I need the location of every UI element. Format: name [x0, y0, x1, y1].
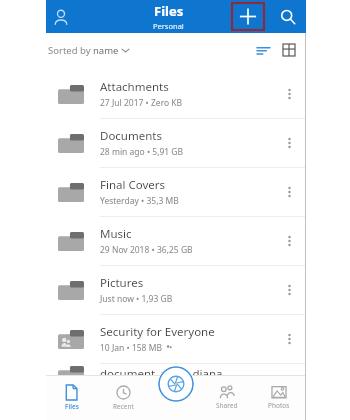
button[interactable]: document_aagu_diana	[46, 364, 306, 386]
button[interactable]: Grid view	[276, 37, 302, 63]
staticText: Documents	[100, 128, 162, 144]
staticText: Music	[100, 226, 132, 242]
button[interactable]: Documents	[46, 119, 306, 167]
staticText: Files	[65, 402, 79, 411]
button[interactable]: Recent	[97, 375, 149, 420]
staticText: Photos	[268, 401, 290, 410]
staticText: Security for Everyone	[100, 324, 215, 340]
staticText: Sorted by	[48, 44, 93, 57]
staticText: 10 Jan • 158 MB	[100, 342, 162, 354]
button[interactable]: Music	[46, 217, 306, 265]
button[interactable]: Pictures	[46, 266, 306, 314]
staticText: 29 Nov 2018 • 36,25 GB	[100, 244, 193, 256]
button[interactable]: Photos	[253, 375, 305, 420]
staticText: 27 Jul 2017 • Zero KB	[100, 97, 183, 109]
button[interactable]: More options	[276, 81, 302, 107]
button[interactable]: Scan	[158, 366, 194, 402]
button[interactable]: Search	[274, 3, 302, 31]
button[interactable]: More options	[276, 179, 302, 205]
button[interactable]: Shared	[201, 375, 253, 420]
button[interactable]: More options	[276, 326, 302, 352]
button[interactable]: More options	[276, 228, 302, 254]
button[interactable]: More options	[276, 277, 302, 303]
staticText: 28 min ago • 5,91 GB	[100, 146, 184, 158]
button[interactable]: Sort order	[250, 37, 276, 63]
staticText: Shared	[216, 401, 238, 410]
staticText: Personal	[153, 21, 184, 31]
button[interactable]: Final Covers	[46, 168, 306, 216]
button[interactable]: Sorted by	[48, 44, 129, 57]
staticText: document_aagu_diana	[100, 366, 223, 382]
staticText: Just now • 1,93 GB	[100, 293, 173, 305]
button[interactable]: Security for Everyone	[46, 315, 306, 363]
staticText: Attachments	[100, 79, 169, 95]
staticText: Final Covers	[100, 177, 166, 193]
button[interactable]: Add	[232, 3, 264, 30]
button[interactable]: Attachments	[46, 70, 306, 118]
staticText: Yesterday • 35,3 MB	[100, 195, 179, 207]
staticText: Pictures	[100, 275, 144, 291]
staticText: Files	[154, 2, 184, 20]
button[interactable]: Account	[46, 2, 76, 32]
staticText: Recent	[113, 402, 134, 411]
button[interactable]: Files	[46, 375, 97, 420]
button[interactable]: More options	[276, 130, 302, 156]
staticText: name	[93, 44, 119, 57]
